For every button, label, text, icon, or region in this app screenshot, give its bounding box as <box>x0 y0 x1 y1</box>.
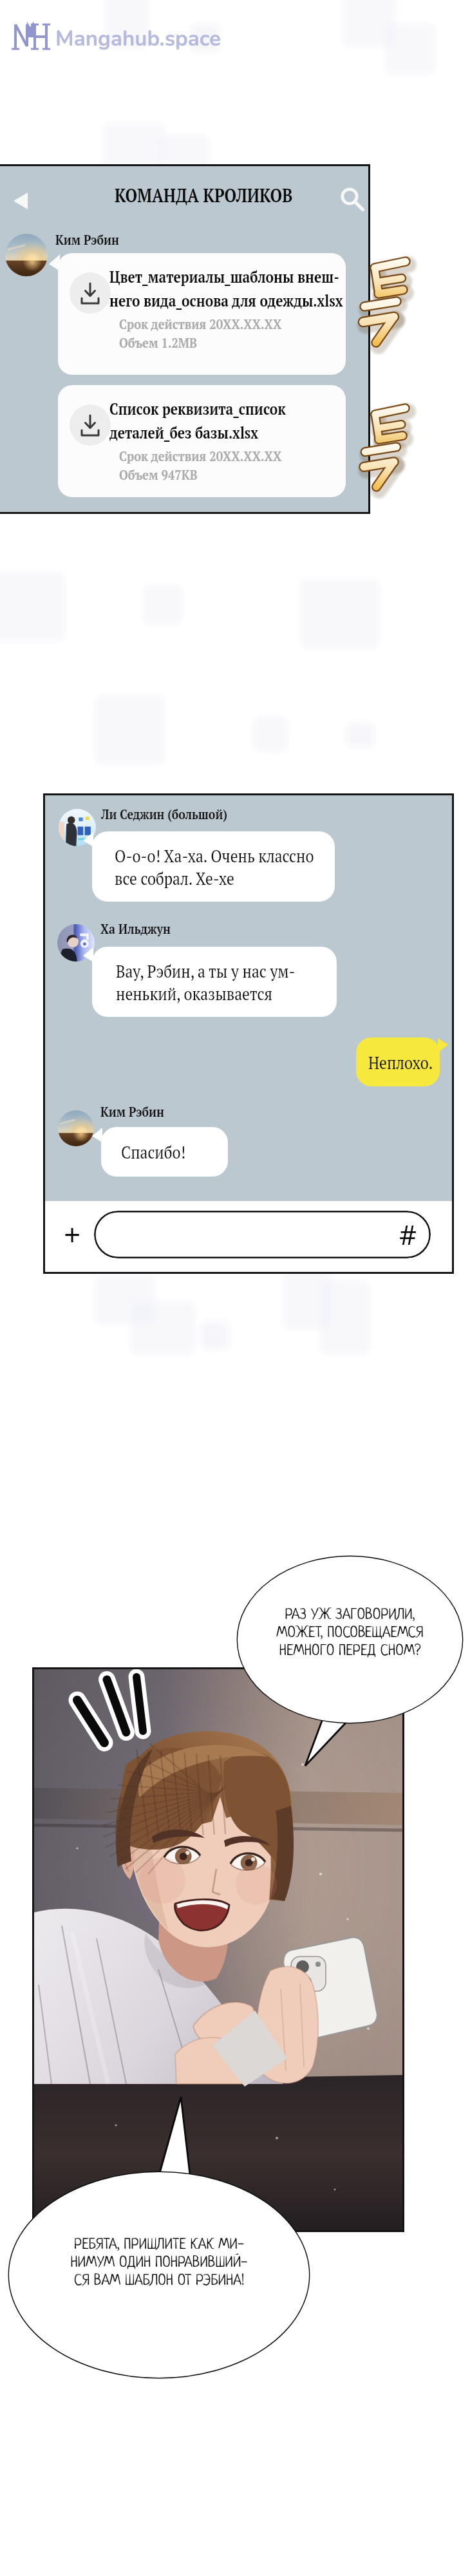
button[interactable]: О-о-о! Ха-ха. Очень классно все собрал. … <box>92 831 335 902</box>
staticText: Ли Седжин (большой) <box>101 805 228 823</box>
staticText: # <box>399 1216 417 1253</box>
button[interactable]: Add attachment <box>54 1214 90 1254</box>
staticText: Ким Рэбин <box>100 1103 164 1121</box>
button[interactable]: Вау, Рэбин, а ты у нас ум- ненький, оказ… <box>92 947 337 1017</box>
staticText: О-о-о! Ха-ха. Очень классно все собрал. … <box>115 844 314 890</box>
staticText: Ха Ильджун <box>100 920 171 938</box>
staticText: РАЗ УЖ ЗАГОВОРИЛИ, МОЖЕТ, ПОСОВЕЩАЕМСЯ Н… <box>238 1607 462 1660</box>
staticText: КОМАНДА КРОЛИКОВ <box>115 182 293 207</box>
staticText: Список реквизита_список деталей_без базы… <box>109 398 286 443</box>
staticText: Спасибо! <box>121 1140 186 1164</box>
staticText: РЕБЯТА, ПРИШЛИТЕ КАК МИ- НИМУМ ОДИН ПОНР… <box>9 2237 309 2289</box>
button[interactable]: Неплохо. <box>356 1037 440 1086</box>
staticText: Срок действия 20XX.XX.XX Объем 947KB <box>119 446 282 484</box>
button[interactable]: Цвет_материалы_шаблоны внеш- него вида_о… <box>58 253 346 375</box>
staticText: Неплохо. <box>368 1050 433 1074</box>
staticText: Цвет_материалы_шаблоны внеш- него вида_о… <box>109 266 343 311</box>
button[interactable]: Список реквизита_список деталей_без базы… <box>58 385 346 497</box>
staticText: Срок действия 20XX.XX.XX Объем 1.2MB <box>119 314 282 352</box>
button[interactable]: Back <box>4 185 36 216</box>
staticText: + <box>64 1214 81 1254</box>
button[interactable]: Спасибо! <box>101 1127 228 1177</box>
staticText: Вау, Рэбин, а ты у нас ум- ненький, оказ… <box>116 959 295 1005</box>
staticText: Ким Рэбин <box>55 231 119 249</box>
button[interactable] <box>94 1211 431 1258</box>
button[interactable]: Hashtag <box>390 1214 426 1254</box>
button[interactable]: Search <box>334 181 368 216</box>
staticText: Mangahub.space <box>55 24 221 53</box>
